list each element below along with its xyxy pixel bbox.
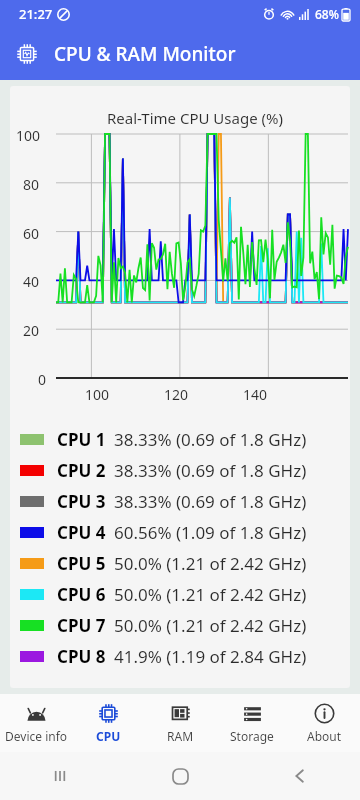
button[interactable]: CPU 3 [20,486,350,517]
staticText: CPU 8 [57,645,106,668]
staticText: 38.33% (0.69 of 1.8 GHz) [114,459,307,482]
staticText: 80 [23,175,40,194]
staticText: Real-Time CPU Usage (%) [107,108,283,128]
button[interactable]: CPU 5 [20,548,350,579]
staticText: 21:27 [19,5,53,23]
button[interactable]: Back [240,752,360,800]
staticText: CPU 6 [57,583,106,606]
staticText: Storage [230,728,274,744]
button[interactable]: CPU 1 [20,424,350,455]
staticText: RAM [167,728,194,744]
staticText: 60 [23,224,40,243]
staticText: 120 [164,385,189,404]
button[interactable]: About [288,694,360,752]
staticText: Device info [5,728,68,744]
staticText: CPU 5 [57,552,106,575]
button[interactable]: Home [120,752,240,800]
staticText: 41.9% (1.19 of 2.84 GHz) [114,645,307,668]
staticText: 140 [243,385,268,404]
button[interactable]: Recents [0,752,120,800]
staticText: CPU [96,728,121,744]
staticText: 50.0% (1.21 of 2.42 GHz) [114,583,307,606]
button[interactable]: RAM [144,694,216,752]
staticText: CPU 3 [57,490,106,513]
staticText: 50.0% (1.21 of 2.42 GHz) [114,552,307,575]
button[interactable]: CPU [72,694,144,752]
button[interactable]: CPU 4 [20,517,350,548]
staticText: CPU 4 [57,521,106,544]
staticText: CPU & RAM Monitor [54,41,236,67]
staticText: 0 [38,370,47,389]
button[interactable]: CPU 2 [20,455,350,486]
staticText: 20 [23,321,40,340]
button[interactable]: CPU 7 [20,610,350,641]
staticText: 50.0% (1.21 of 2.42 GHz) [114,614,307,637]
staticText: 38.33% (0.69 of 1.8 GHz) [114,428,307,451]
staticText: 100 [16,126,41,145]
button[interactable]: CPU 6 [20,579,350,610]
staticText: 40 [23,272,40,291]
staticText: 38.33% (0.69 of 1.8 GHz) [114,490,307,513]
staticText: About [307,728,342,744]
button[interactable]: Storage [216,694,288,752]
staticText: 68% [315,6,339,22]
staticText: CPU 2 [57,459,106,482]
staticText: CPU 1 [57,428,106,451]
button[interactable]: CPU 8 [20,641,350,672]
staticText: 60.56% (1.09 of 1.8 GHz) [114,521,307,544]
staticText: CPU 7 [57,614,106,637]
button[interactable]: Device info [0,694,72,752]
staticText: 100 [85,385,110,404]
